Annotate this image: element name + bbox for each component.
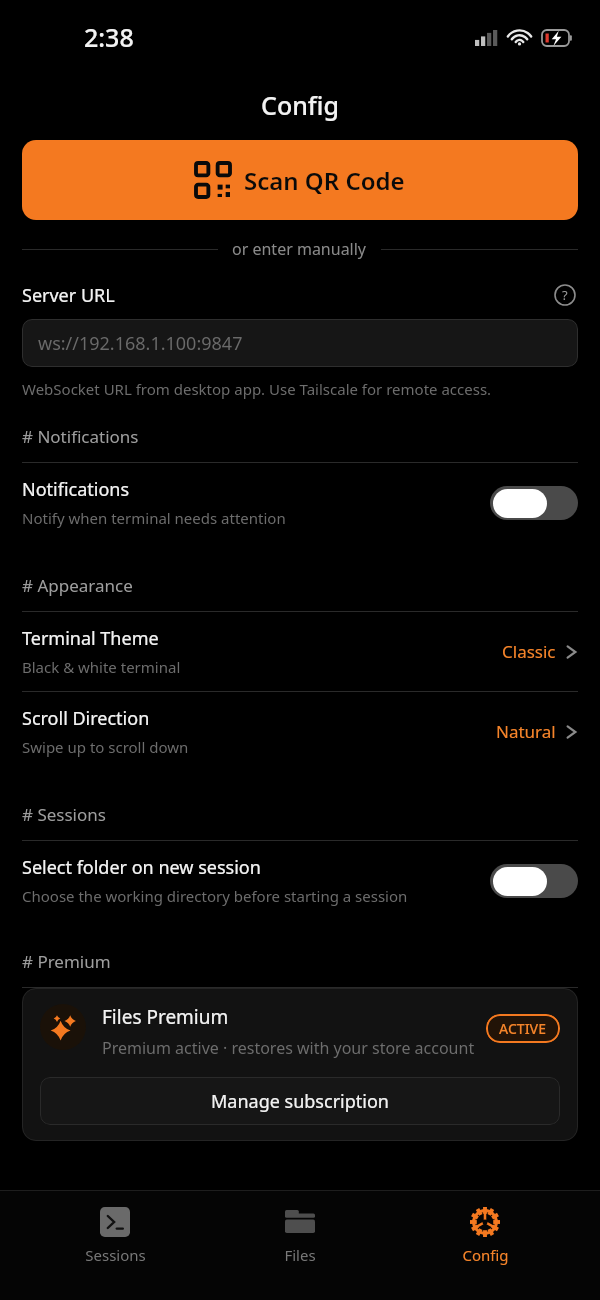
staticText: ACTIVE — [499, 1019, 547, 1038]
button[interactable]: Manage subscription — [40, 1077, 560, 1125]
staticText: Manage subscription — [211, 1089, 389, 1114]
staticText: Notify when terminal needs attention — [22, 508, 286, 528]
staticText: # Premium — [22, 950, 111, 973]
staticText: Sessions — [85, 1245, 146, 1265]
button[interactable]: Terminal Theme — [0, 612, 600, 691]
staticText: Swipe up to scroll down — [22, 737, 189, 757]
staticText: # Appearance — [22, 574, 133, 597]
staticText: 2:38 — [84, 20, 134, 54]
staticText: ws://192.168.1.100:9847 — [38, 331, 243, 356]
button[interactable]: ACTIVE — [486, 1014, 560, 1043]
staticText: Premium active · restores with your stor… — [102, 1037, 475, 1059]
staticText: Select folder on new session — [22, 855, 261, 880]
button[interactable]: ws://192.168.1.100:9847 — [22, 319, 578, 367]
staticText: Files Premium — [102, 1004, 229, 1030]
button[interactable]: Scroll Direction — [0, 692, 600, 771]
staticText: Scroll Direction — [22, 706, 150, 731]
staticText: Server URL — [22, 283, 115, 308]
staticText: # Notifications — [22, 425, 139, 448]
button[interactable]: Config — [415, 1203, 555, 1269]
button[interactable]: Scan QR Code — [22, 140, 578, 220]
staticText: Notifications — [22, 477, 130, 502]
staticText: Files — [284, 1245, 316, 1265]
staticText: Natural — [496, 720, 556, 743]
button[interactable]: Sessions — [45, 1203, 185, 1269]
staticText: Choose the working directory before star… — [22, 886, 408, 906]
button[interactable]: Notifications — [0, 463, 600, 542]
staticText: ? — [562, 286, 568, 304]
button[interactable]: Select folder on new session — [0, 841, 600, 920]
staticText: Terminal Theme — [22, 626, 159, 651]
staticText: or enter manually — [232, 238, 367, 260]
staticText: Scan QR Code — [244, 164, 405, 197]
staticText: Classic — [502, 640, 556, 663]
button[interactable]: Help — [552, 282, 578, 308]
button[interactable]: Files — [230, 1203, 370, 1269]
staticText: # Sessions — [22, 803, 106, 826]
staticText: WebSocket URL from desktop app. Use Tail… — [22, 379, 492, 399]
staticText: Config — [462, 1245, 509, 1265]
staticText: Black & white terminal — [22, 657, 181, 677]
staticText: Config — [261, 88, 339, 122]
